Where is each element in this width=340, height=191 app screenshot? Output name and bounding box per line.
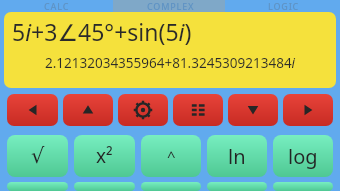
button[interactable] xyxy=(207,182,267,191)
button[interactable]: Down xyxy=(228,94,278,126)
staticText: 2.12132034355964+81.3245309213484i xyxy=(45,54,296,72)
button[interactable]: Next xyxy=(283,94,333,126)
button[interactable]: ln xyxy=(207,135,267,177)
button[interactable] xyxy=(7,182,68,191)
staticText: x² xyxy=(96,143,113,169)
button[interactable]: √ xyxy=(7,135,68,177)
button[interactable]: Menu xyxy=(173,94,223,126)
button[interactable]: Previous xyxy=(7,94,58,126)
button[interactable] xyxy=(141,182,201,191)
button[interactable]: Settings xyxy=(118,94,168,126)
staticText: 5i+3∠45°+sin(5i) xyxy=(12,16,192,47)
staticText: ^ xyxy=(167,146,176,166)
staticText: LOGIC xyxy=(268,0,300,12)
button[interactable]: CALC xyxy=(0,0,114,12)
button[interactable]: Up xyxy=(63,94,113,126)
button[interactable]: LOGIC xyxy=(227,0,340,12)
button[interactable]: log xyxy=(273,135,333,177)
button[interactable]: 5i+3∠45°+sin(5i) xyxy=(4,12,336,88)
button[interactable] xyxy=(273,182,333,191)
staticText: √ xyxy=(31,144,45,168)
button[interactable] xyxy=(74,182,135,191)
staticText: log xyxy=(288,143,318,170)
button[interactable]: COMPLEX xyxy=(114,0,227,12)
button[interactable]: ^ xyxy=(141,135,201,177)
staticText: ln xyxy=(228,143,246,170)
button[interactable]: x² xyxy=(74,135,135,177)
staticText: CALC xyxy=(44,0,70,12)
staticText: COMPLEX xyxy=(147,0,195,12)
